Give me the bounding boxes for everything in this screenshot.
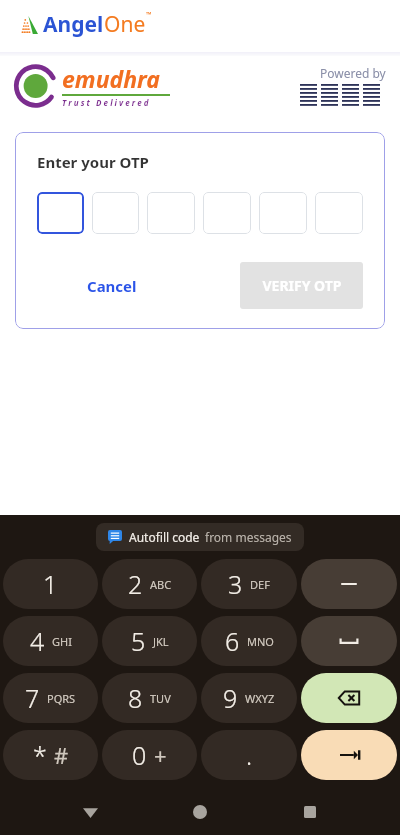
staticText: 8 bbox=[128, 681, 143, 715]
staticText: 6 bbox=[225, 624, 240, 658]
button[interactable]: Home bbox=[180, 792, 220, 832]
button[interactable] bbox=[92, 192, 139, 234]
button[interactable] bbox=[315, 192, 363, 234]
staticText: WXYZ bbox=[245, 691, 275, 706]
staticText: 4 bbox=[30, 624, 45, 658]
staticText: TUV bbox=[150, 691, 171, 706]
button[interactable]: VERIFY OTP bbox=[240, 262, 363, 309]
staticText: Enter your OTP bbox=[37, 152, 149, 172]
staticText: emudhra bbox=[62, 63, 160, 94]
staticText: 3 bbox=[228, 567, 243, 601]
staticText: Powered by bbox=[320, 65, 386, 81]
staticText: # bbox=[54, 740, 69, 770]
button[interactable]: 1 bbox=[3, 559, 98, 609]
staticText: * bbox=[33, 738, 47, 772]
staticText: + bbox=[154, 740, 167, 770]
button[interactable]: 6 bbox=[201, 616, 297, 666]
button[interactable] bbox=[147, 192, 195, 234]
staticText: Autofill code bbox=[129, 529, 200, 545]
button[interactable]: 3 bbox=[201, 559, 297, 609]
button[interactable]: Recents bbox=[290, 792, 330, 832]
staticText: Angel bbox=[43, 10, 104, 39]
staticText: PQRS bbox=[47, 691, 76, 706]
button[interactable]: 5 bbox=[102, 616, 197, 666]
staticText: 2 bbox=[128, 567, 143, 601]
button[interactable]: 4 bbox=[3, 616, 98, 666]
staticText: VERIFY OTP bbox=[262, 276, 342, 295]
button[interactable]: 9 bbox=[201, 673, 297, 723]
button[interactable]: 7 bbox=[3, 673, 98, 723]
staticText: DEF bbox=[250, 577, 270, 592]
staticText: 7 bbox=[25, 681, 40, 715]
button[interactable] bbox=[203, 192, 251, 234]
button[interactable]: . bbox=[201, 730, 297, 780]
staticText: 1 bbox=[43, 567, 58, 601]
button[interactable] bbox=[259, 192, 307, 234]
staticText: GHI bbox=[52, 634, 72, 649]
staticText: 0 bbox=[132, 738, 147, 772]
staticText: ™ bbox=[146, 10, 152, 20]
staticText: ABC bbox=[150, 577, 172, 592]
button[interactable]: 2 bbox=[102, 559, 197, 609]
staticText: . bbox=[246, 738, 253, 772]
button[interactable]: Back bbox=[70, 792, 110, 832]
button[interactable]: Space bbox=[301, 616, 397, 666]
staticText: 9 bbox=[223, 681, 238, 715]
button[interactable]: Dash bbox=[301, 559, 397, 609]
staticText: from messages bbox=[205, 529, 292, 545]
button[interactable]: 0 bbox=[102, 730, 197, 780]
button[interactable]: * bbox=[3, 730, 98, 780]
button[interactable]: Cancel bbox=[79, 270, 145, 302]
staticText: MNO bbox=[247, 634, 274, 649]
staticText: Cancel bbox=[87, 276, 137, 296]
staticText: JKL bbox=[153, 634, 169, 649]
staticText: 5 bbox=[131, 624, 146, 658]
button[interactable] bbox=[37, 192, 84, 234]
button[interactable]: 8 bbox=[102, 673, 197, 723]
staticText: T r u s t D e l i v e r e d bbox=[62, 97, 149, 108]
staticText: One bbox=[104, 10, 146, 39]
button[interactable]: Autofill code bbox=[96, 523, 304, 551]
button[interactable]: Backspace bbox=[301, 673, 397, 723]
button[interactable]: Enter bbox=[301, 730, 397, 780]
